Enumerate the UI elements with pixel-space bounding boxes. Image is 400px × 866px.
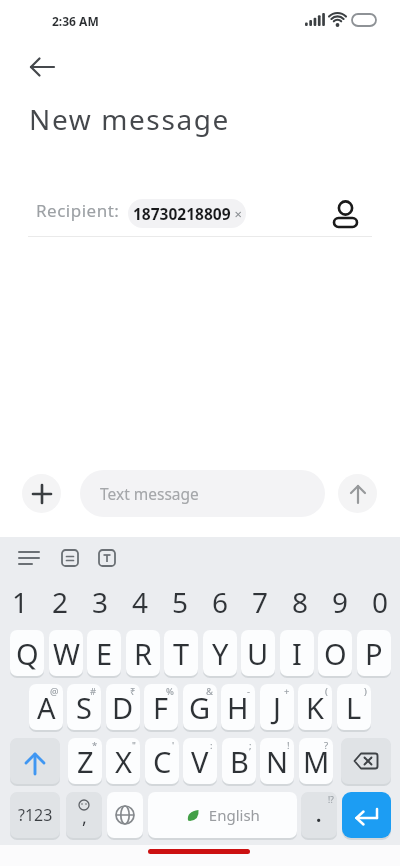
staticText: %	[166, 685, 174, 698]
staticText: X	[115, 742, 132, 781]
button[interactable]: V	[183, 738, 217, 784]
staticText: -	[247, 685, 251, 698]
button[interactable]	[329, 194, 361, 228]
staticText: K	[306, 688, 324, 727]
staticText: G	[189, 688, 211, 727]
button[interactable]	[22, 474, 61, 513]
button[interactable]: 4	[120, 583, 160, 615]
staticText: ₹	[130, 685, 136, 698]
staticText: R	[134, 634, 153, 673]
button[interactable]: English	[148, 792, 297, 838]
button[interactable]: E	[87, 630, 121, 676]
staticText: *	[92, 739, 98, 752]
staticText: L	[346, 688, 362, 727]
staticText: +	[284, 685, 290, 698]
button[interactable]: T	[164, 630, 198, 676]
staticText: 2:36 AM	[52, 13, 99, 29]
button[interactable]: U	[241, 630, 275, 676]
staticText: A	[37, 688, 56, 727]
staticText: 7	[252, 583, 269, 615]
staticText: Text message	[100, 483, 199, 504]
button[interactable]: 8	[280, 583, 320, 615]
staticText: D	[112, 688, 134, 727]
staticText: Recipient:	[36, 199, 120, 222]
button[interactable]: C	[145, 738, 179, 784]
staticText: V	[191, 742, 209, 781]
button[interactable]: 5	[160, 583, 200, 615]
staticText: '	[172, 739, 175, 752]
button[interactable]: S	[67, 684, 101, 730]
staticText: "	[132, 739, 136, 752]
button[interactable]	[16, 546, 42, 570]
staticText: H	[227, 688, 249, 727]
staticText: (	[325, 685, 328, 698]
button[interactable]: K	[298, 684, 332, 730]
staticText: ×	[231, 205, 242, 223]
staticText: U	[247, 634, 269, 673]
button[interactable]: N	[260, 738, 294, 784]
staticText: M	[303, 742, 330, 781]
staticText: @	[50, 685, 59, 698]
staticText: P	[365, 634, 383, 673]
button[interactable]: B	[222, 738, 256, 784]
button[interactable]: X	[106, 738, 140, 784]
staticText: )	[364, 685, 367, 698]
button[interactable]: L	[337, 684, 371, 730]
staticText: New message	[29, 100, 230, 138]
button[interactable]: ?123	[10, 792, 60, 838]
button[interactable]: 9	[320, 583, 360, 615]
staticText: 5	[172, 583, 189, 615]
staticText: ?	[324, 739, 329, 752]
staticText: ;	[249, 739, 252, 752]
button[interactable]: Z	[68, 738, 102, 784]
staticText: E	[96, 634, 113, 673]
staticText: 0	[372, 583, 389, 615]
button[interactable]: W	[49, 630, 83, 676]
button[interactable]	[95, 546, 119, 570]
button[interactable]: .	[301, 792, 337, 838]
staticText: !	[287, 739, 290, 752]
staticText: Q	[16, 634, 39, 673]
staticText: !?	[328, 794, 334, 805]
button[interactable]: Q	[10, 630, 44, 676]
button[interactable]: O	[318, 630, 352, 676]
button[interactable]	[10, 738, 60, 784]
staticText: English	[201, 805, 260, 825]
staticText: J	[273, 688, 281, 727]
button[interactable]: 18730218809	[128, 199, 246, 228]
button[interactable]	[25, 52, 59, 82]
staticText: 4	[132, 583, 149, 615]
staticText: Z	[77, 742, 94, 781]
staticText: S	[76, 688, 92, 727]
button[interactable]: M	[299, 738, 333, 784]
button[interactable]: Y	[203, 630, 237, 676]
button[interactable]: 0	[360, 583, 400, 615]
staticText: ,	[82, 805, 87, 830]
staticText: W	[53, 634, 80, 673]
button[interactable]: G	[183, 684, 217, 730]
button[interactable]: 6	[200, 583, 240, 615]
staticText: B	[230, 742, 249, 781]
button[interactable]: H	[221, 684, 255, 730]
button[interactable]: A	[29, 684, 63, 730]
button[interactable]	[338, 474, 377, 513]
button[interactable]: F	[144, 684, 178, 730]
button[interactable]	[58, 546, 82, 570]
button[interactable]: R	[126, 630, 160, 676]
button[interactable]: 1	[0, 583, 40, 615]
button[interactable]: 7	[240, 583, 280, 615]
button[interactable]: I	[280, 630, 314, 676]
button[interactable]: Text message	[80, 470, 325, 517]
button[interactable]: J	[260, 684, 294, 730]
button[interactable]	[341, 738, 391, 784]
staticText: #	[90, 685, 97, 698]
staticText: 1	[12, 583, 29, 615]
button[interactable]: 2	[40, 583, 80, 615]
button[interactable]	[107, 792, 143, 838]
button[interactable]: 3	[80, 583, 120, 615]
button[interactable]: ,	[66, 792, 102, 838]
button[interactable]	[342, 792, 391, 838]
button[interactable]: P	[357, 630, 391, 676]
button[interactable]: D	[106, 684, 140, 730]
staticText: F	[153, 688, 169, 727]
